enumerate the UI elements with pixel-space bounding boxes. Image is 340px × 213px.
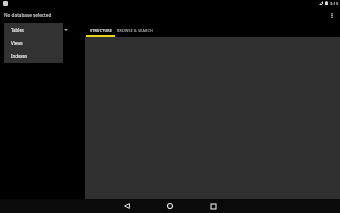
button[interactable]: Home [160,199,180,213]
button[interactable]: BROWSE & SEARCH [115,25,155,37]
button[interactable]: Views [4,36,63,49]
staticText: BROWSE & SEARCH [117,28,153,33]
button[interactable]: Recents [203,199,223,213]
button[interactable]: Back [117,199,137,213]
staticText: Tables [11,27,24,33]
staticText: Indexes [11,53,28,59]
staticText: No database selected [4,12,52,18]
button[interactable]: Tables [4,23,63,36]
staticText: Views [11,40,23,46]
button[interactable]: Indexes [4,49,63,62]
button[interactable]: STRUCTURE [86,25,115,37]
staticText: 3:15 [330,1,339,7]
staticText: STRUCTURE [90,28,112,33]
button[interactable]: More options [325,8,339,22]
